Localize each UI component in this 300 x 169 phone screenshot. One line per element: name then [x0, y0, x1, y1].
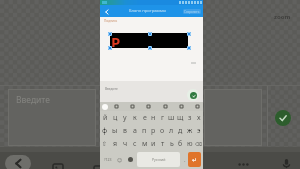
button[interactable]: Frame: [91, 163, 106, 169]
button[interactable]: г: [158, 111, 167, 124]
staticText: ш: [168, 113, 175, 123]
button[interactable]: у: [120, 111, 130, 124]
staticText: zoom: [274, 13, 291, 21]
staticText: Введите: [105, 87, 118, 91]
staticText: к: [133, 113, 137, 123]
staticText: ф: [102, 126, 108, 136]
staticText: ⌫: [195, 141, 203, 147]
staticText: ы: [112, 126, 118, 136]
button[interactable]: More options: [234, 156, 252, 169]
staticText: р: [151, 126, 156, 136]
staticText: в: [123, 126, 127, 136]
staticText: Бланк программы: [129, 8, 167, 14]
button[interactable]: р: [149, 124, 158, 137]
staticText: ц: [113, 113, 118, 123]
button[interactable]: ы: [110, 124, 120, 137]
button[interactable]: Back: [5, 155, 31, 169]
button[interactable]: Введите: [8, 89, 96, 146]
staticText: э: [197, 126, 201, 136]
button[interactable]: я: [110, 137, 120, 150]
button[interactable]: Emoji: [125, 152, 136, 167]
button[interactable]: Keyboard tool: [178, 103, 185, 110]
button[interactable]: щ: [176, 111, 185, 124]
button[interactable]: Sticker: [114, 152, 125, 167]
staticText: Русский: [152, 157, 166, 162]
staticText: у: [123, 113, 127, 123]
button[interactable]: Backspace: [194, 137, 203, 150]
staticText: б: [178, 139, 183, 149]
button[interactable]: к: [130, 111, 140, 124]
staticText: я: [113, 139, 118, 149]
button[interactable]: э: [194, 124, 203, 137]
staticText: м: [142, 139, 148, 149]
button[interactable]: ?123: [102, 152, 114, 167]
button[interactable]: Keyboard tool: [129, 103, 136, 110]
staticText: .: [184, 156, 186, 164]
staticText: т: [161, 139, 165, 149]
staticText: н: [151, 113, 156, 123]
staticText: ⇧: [102, 140, 108, 147]
staticText: п: [142, 126, 147, 136]
button[interactable]: й: [100, 111, 110, 124]
button[interactable]: п: [140, 124, 149, 137]
button[interactable]: Image: [50, 161, 65, 169]
staticText: д: [178, 126, 183, 136]
button[interactable]: о: [158, 124, 167, 137]
button[interactable]: з: [185, 111, 194, 124]
staticText: й: [103, 113, 108, 123]
button[interactable]: Keyboard tool: [145, 103, 152, 110]
button[interactable]: ч: [120, 137, 130, 150]
button[interactable]: е: [140, 111, 149, 124]
staticText: а: [133, 126, 137, 136]
button[interactable]: Back: [101, 6, 112, 17]
button[interactable]: Keyboard tool: [113, 103, 120, 110]
staticText: ?123: [104, 157, 112, 162]
button[interactable]: Confirm: [275, 110, 291, 126]
staticText: Сохранить: [184, 10, 200, 14]
button[interactable]: х: [194, 111, 203, 124]
button[interactable]: т: [158, 137, 167, 150]
button[interactable]: ф: [100, 124, 110, 137]
staticText: ж: [187, 126, 193, 136]
staticText: с: [133, 139, 137, 149]
button[interactable]: Keyboard tool: [162, 103, 169, 110]
staticText: Введите: [16, 94, 50, 106]
staticText: ☺: [117, 157, 123, 163]
staticText: Подпись: [104, 19, 118, 23]
staticText: Р: [111, 32, 121, 47]
button[interactable]: ь: [167, 137, 176, 150]
button[interactable]: а: [130, 124, 140, 137]
button[interactable]: л: [167, 124, 176, 137]
button[interactable]: Keyboard tool: [194, 103, 201, 110]
staticText: е: [143, 113, 147, 123]
staticText: ю: [187, 139, 193, 149]
button[interactable]: с: [130, 137, 140, 150]
staticText: о: [160, 126, 165, 136]
button[interactable]: ю: [185, 137, 194, 150]
button[interactable]: и: [149, 137, 158, 150]
staticText: л: [169, 126, 174, 136]
staticText: и: [151, 139, 156, 149]
button[interactable]: .: [181, 152, 188, 167]
button[interactable]: д: [176, 124, 185, 137]
button[interactable]: Shift: [100, 137, 110, 150]
button[interactable]: н: [149, 111, 158, 124]
staticText: ь: [170, 139, 174, 149]
button[interactable]: Send: [187, 89, 199, 101]
button[interactable]: ж: [185, 124, 194, 137]
button[interactable]: Gboard menu: [102, 104, 108, 110]
button[interactable]: Enter: [188, 152, 201, 167]
button[interactable]: в: [120, 124, 130, 137]
button[interactable]: Русский: [137, 152, 180, 167]
button[interactable]: ш: [167, 111, 176, 124]
button[interactable]: Voice input: [278, 155, 294, 169]
button[interactable]: ц: [110, 111, 120, 124]
staticText: ч: [123, 139, 128, 149]
staticText: з: [188, 113, 192, 123]
staticText: щ: [177, 113, 184, 123]
staticText: х: [197, 113, 201, 123]
button[interactable]: б: [176, 137, 185, 150]
button[interactable]: Сохранить: [183, 9, 201, 14]
button[interactable]: м: [140, 137, 149, 150]
